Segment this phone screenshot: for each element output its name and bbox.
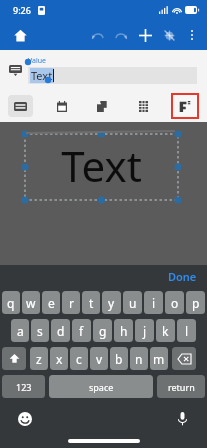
staticText: z bbox=[36, 351, 42, 367]
button[interactable]: u bbox=[123, 291, 142, 314]
button[interactable]: More options bbox=[181, 24, 203, 46]
staticText: v bbox=[96, 351, 103, 367]
button[interactable]: Undo bbox=[85, 23, 109, 47]
button[interactable]: s bbox=[31, 319, 49, 342]
staticText: space bbox=[89, 381, 114, 393]
staticText: h bbox=[120, 323, 128, 339]
button[interactable]: Home bbox=[9, 24, 31, 46]
button[interactable]: n bbox=[130, 347, 148, 370]
staticText: x bbox=[56, 351, 63, 367]
staticText: k bbox=[162, 323, 169, 339]
button[interactable]: d bbox=[51, 319, 70, 342]
button[interactable]: 123 bbox=[2, 375, 45, 398]
staticText: Text bbox=[31, 68, 53, 83]
staticText: o bbox=[171, 295, 179, 311]
button[interactable]: Date bbox=[50, 94, 74, 118]
button[interactable]: Voice input bbox=[171, 408, 193, 430]
button[interactable]: p bbox=[186, 291, 205, 314]
button[interactable]: c bbox=[70, 347, 88, 370]
staticText: p bbox=[192, 295, 200, 311]
button[interactable]: j bbox=[135, 319, 154, 342]
button[interactable]: Layers bbox=[90, 94, 114, 118]
staticText: Text bbox=[61, 137, 142, 194]
button[interactable]: v bbox=[90, 347, 108, 370]
button[interactable]: Done bbox=[168, 269, 197, 284]
button[interactable]: h bbox=[114, 319, 133, 342]
button[interactable]: q bbox=[2, 291, 20, 314]
staticText: q bbox=[7, 295, 15, 311]
button[interactable]: Redo bbox=[109, 23, 133, 47]
button[interactable]: Keyboard bbox=[4, 59, 26, 81]
button[interactable]: a bbox=[11, 319, 29, 342]
button[interactable]: b bbox=[110, 347, 128, 370]
button[interactable]: t bbox=[82, 291, 100, 314]
staticText: r bbox=[69, 295, 74, 311]
staticText: s bbox=[37, 323, 43, 339]
staticText: e bbox=[48, 295, 55, 311]
button[interactable]: Add bbox=[133, 23, 157, 47]
staticText: return bbox=[168, 381, 195, 393]
staticText: w bbox=[26, 295, 36, 311]
staticText: b bbox=[115, 351, 123, 367]
staticText: u bbox=[129, 295, 137, 311]
staticText: 9:26 bbox=[13, 4, 31, 16]
button[interactable]: space bbox=[49, 375, 153, 398]
staticText: n bbox=[135, 351, 143, 367]
button[interactable]: i bbox=[144, 291, 163, 314]
button[interactable]: e bbox=[42, 291, 60, 314]
staticText: t bbox=[89, 295, 94, 311]
staticText: g bbox=[99, 323, 107, 339]
button[interactable]: Table bbox=[131, 94, 155, 118]
button[interactable]: Keyboard input bbox=[8, 95, 33, 117]
staticText: m bbox=[153, 351, 165, 367]
button[interactable]: l bbox=[177, 319, 196, 342]
staticText: a bbox=[17, 323, 24, 339]
staticText: i bbox=[152, 295, 156, 311]
button[interactable]: m bbox=[150, 347, 168, 370]
staticText: y bbox=[108, 295, 115, 311]
button[interactable]: w bbox=[22, 291, 40, 314]
button[interactable]: Emoji bbox=[14, 408, 36, 430]
button[interactable] bbox=[2, 347, 26, 370]
staticText: d bbox=[57, 323, 65, 339]
button[interactable]: f bbox=[72, 319, 91, 342]
staticText: f bbox=[79, 323, 84, 339]
button[interactable]: Disable bbox=[157, 23, 181, 47]
button[interactable]: Text bbox=[28, 67, 197, 84]
staticText: 123 bbox=[16, 381, 32, 393]
button[interactable]: z bbox=[30, 347, 48, 370]
button[interactable]: return bbox=[157, 375, 205, 398]
button[interactable]: g bbox=[93, 319, 112, 342]
button[interactable]: r bbox=[62, 291, 80, 314]
staticText: j bbox=[143, 323, 147, 339]
button[interactable]: x bbox=[50, 347, 68, 370]
button[interactable] bbox=[172, 347, 196, 370]
staticText: l bbox=[185, 323, 189, 339]
button[interactable]: Format bbox=[173, 95, 197, 117]
button[interactable]: y bbox=[102, 291, 121, 314]
button[interactable]: k bbox=[156, 319, 175, 342]
staticText: c bbox=[76, 351, 82, 367]
staticText: Done bbox=[168, 269, 197, 284]
staticText: Value bbox=[28, 56, 47, 66]
button[interactable]: o bbox=[165, 291, 184, 314]
